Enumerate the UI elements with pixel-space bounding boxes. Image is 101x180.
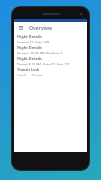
button[interactable]: Transit Link xyxy=(14,65,87,76)
staticText: Line 4 — 12 min xyxy=(17,73,42,76)
button[interactable]: Flight Details xyxy=(14,32,87,43)
staticText: Flight Details xyxy=(17,34,42,39)
staticText: Transit Link xyxy=(17,67,39,72)
button[interactable]: Flight Details xyxy=(14,43,87,54)
staticText: Depart 9:15 AM, Gate A2, Seat 12C xyxy=(17,62,71,65)
staticText: Arriving 10:45 AM, Platform 3 xyxy=(17,51,63,54)
staticText: Flight Details xyxy=(17,56,42,61)
staticText: Flight Details xyxy=(17,45,42,50)
button[interactable]: Flight Details xyxy=(14,54,87,65)
staticText: Terminal 2, Gate 14B xyxy=(17,40,50,43)
button[interactable]: Open navigation menu xyxy=(14,22,87,32)
staticText: Overview xyxy=(29,24,53,31)
button[interactable]: Open navigation menu xyxy=(17,24,24,31)
